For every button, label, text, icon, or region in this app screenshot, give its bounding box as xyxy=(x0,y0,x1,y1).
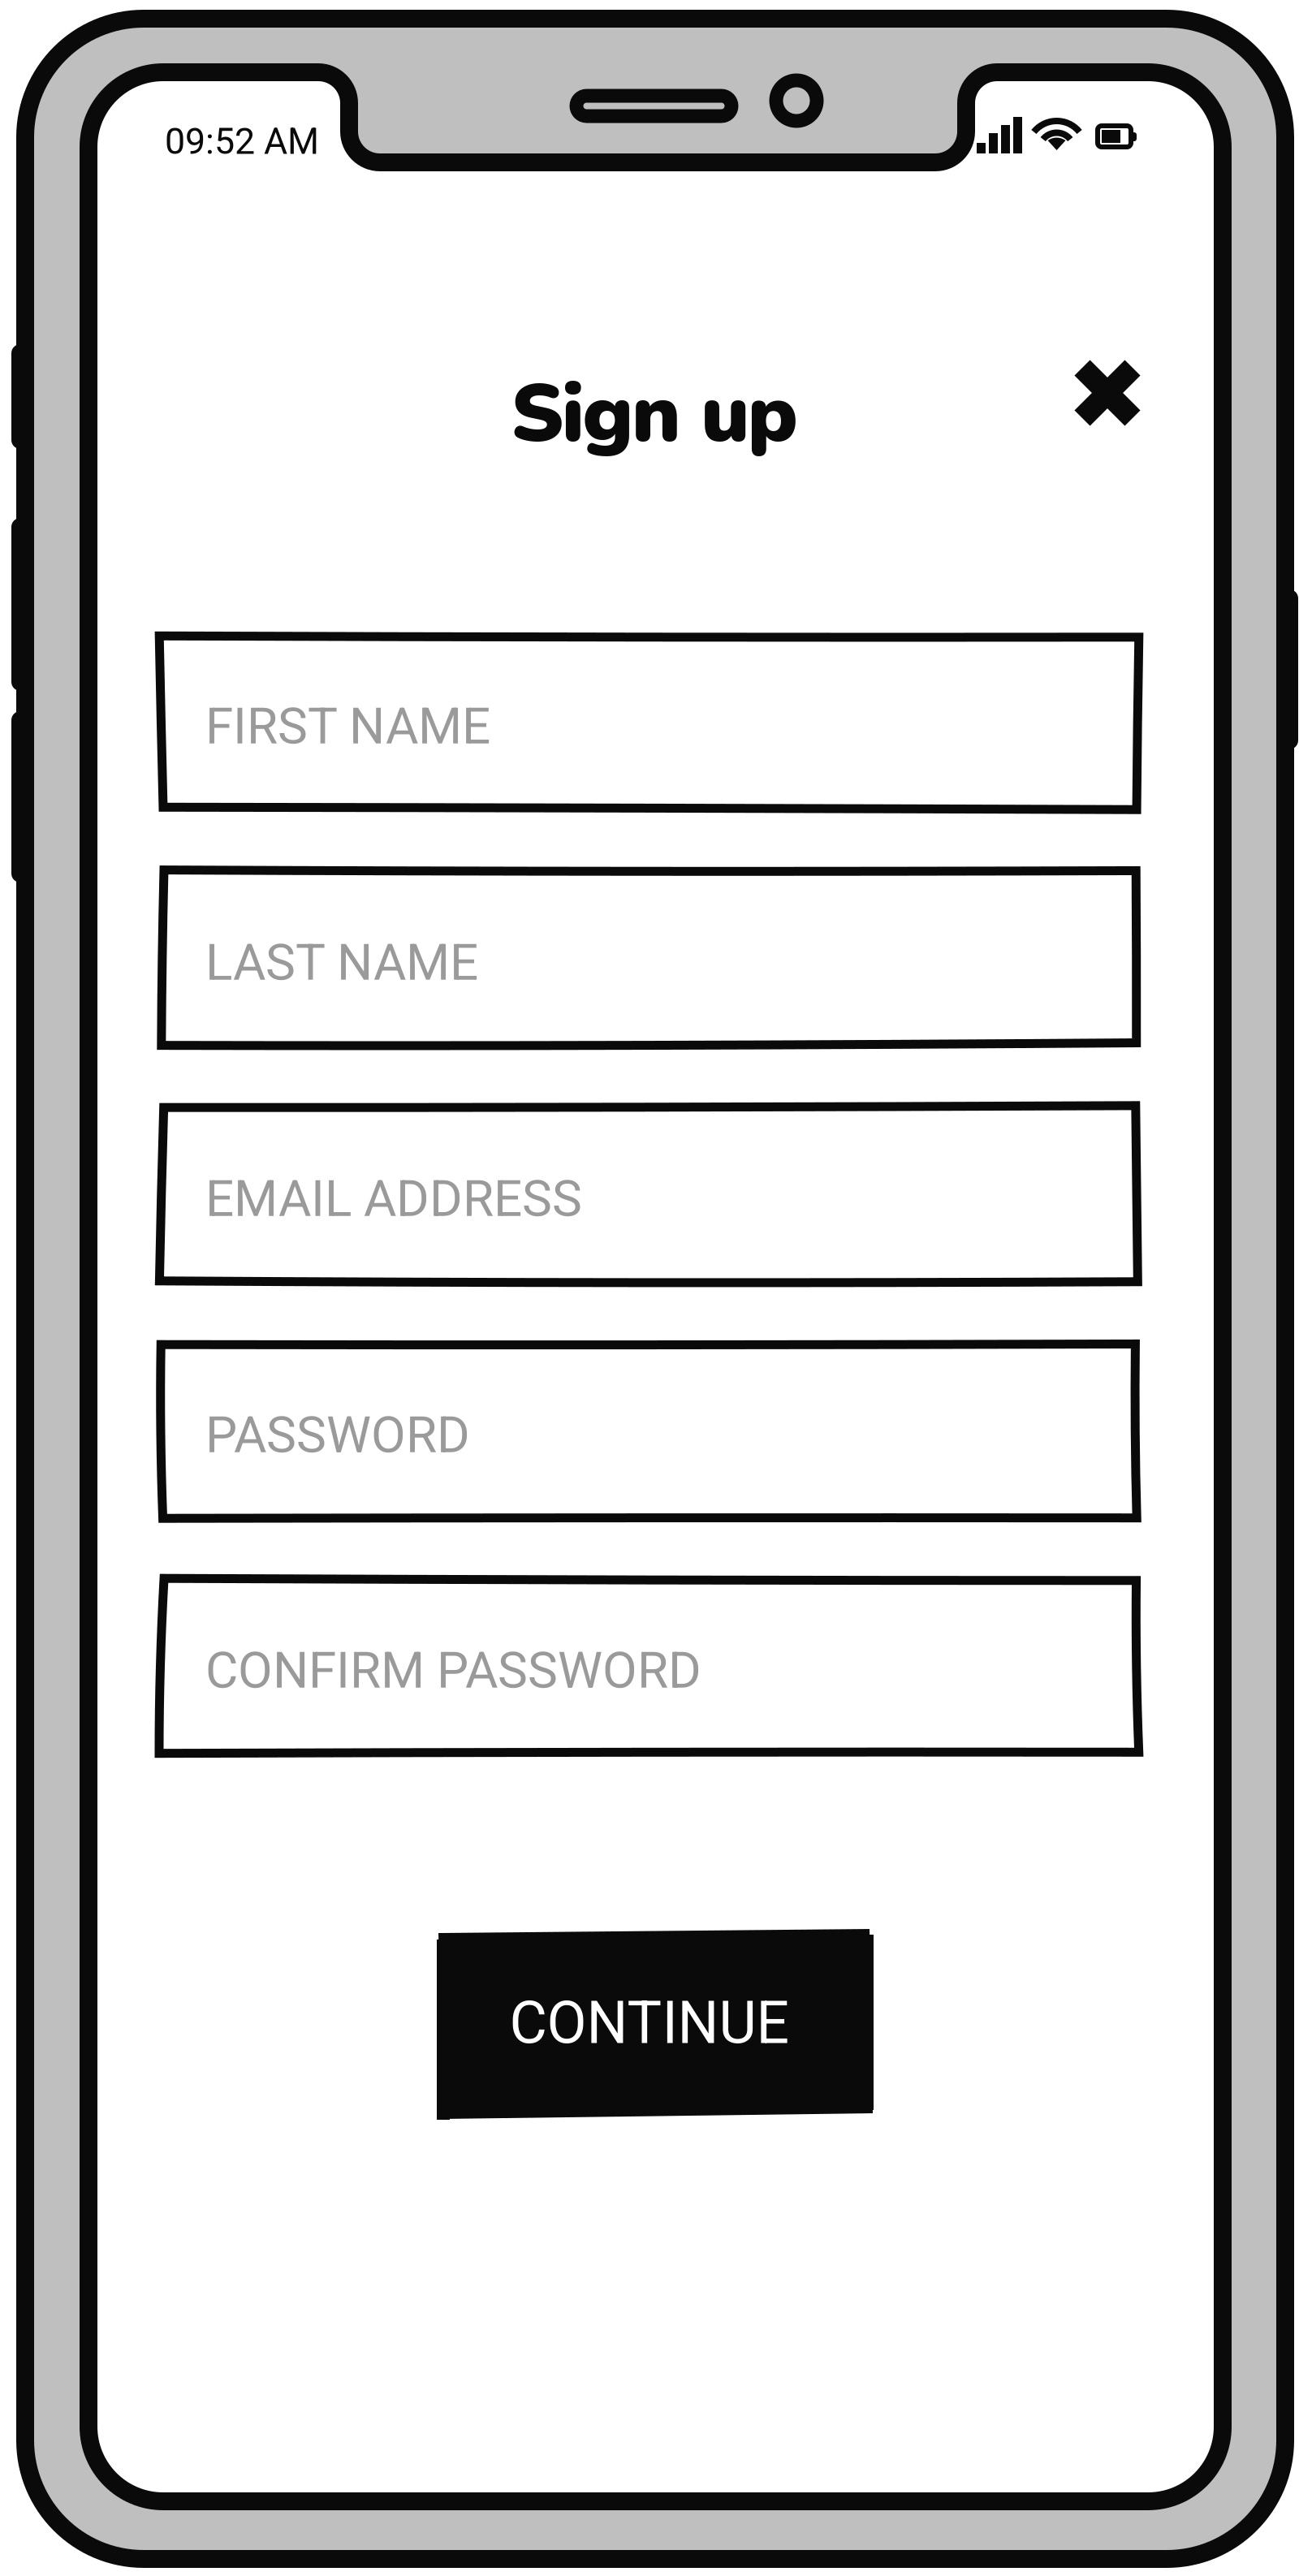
staticText: LAST NAME xyxy=(205,933,478,992)
staticText: Sign up xyxy=(511,359,798,469)
staticText: CONFIRM PASSWORD xyxy=(205,1641,701,1700)
button[interactable]: EMAIL ADDRESS xyxy=(156,1102,1143,1286)
staticText: FIRST NAME xyxy=(205,697,490,756)
button[interactable]: PASSWORD xyxy=(156,1338,1143,1522)
button[interactable]: FIRST NAME xyxy=(156,629,1143,813)
button[interactable]: LAST NAME xyxy=(156,865,1143,1050)
button[interactable]: Close xyxy=(0,0,1299,2576)
staticText: EMAIL ADDRESS xyxy=(205,1169,582,1228)
button[interactable]: CONFIRM PASSWORD xyxy=(156,1573,1143,1758)
staticText: PASSWORD xyxy=(205,1405,470,1464)
staticText: 09:52 AM xyxy=(165,120,319,163)
staticText: CONTINUE xyxy=(509,1989,790,2057)
button[interactable]: CONTINUE xyxy=(431,1923,879,2125)
